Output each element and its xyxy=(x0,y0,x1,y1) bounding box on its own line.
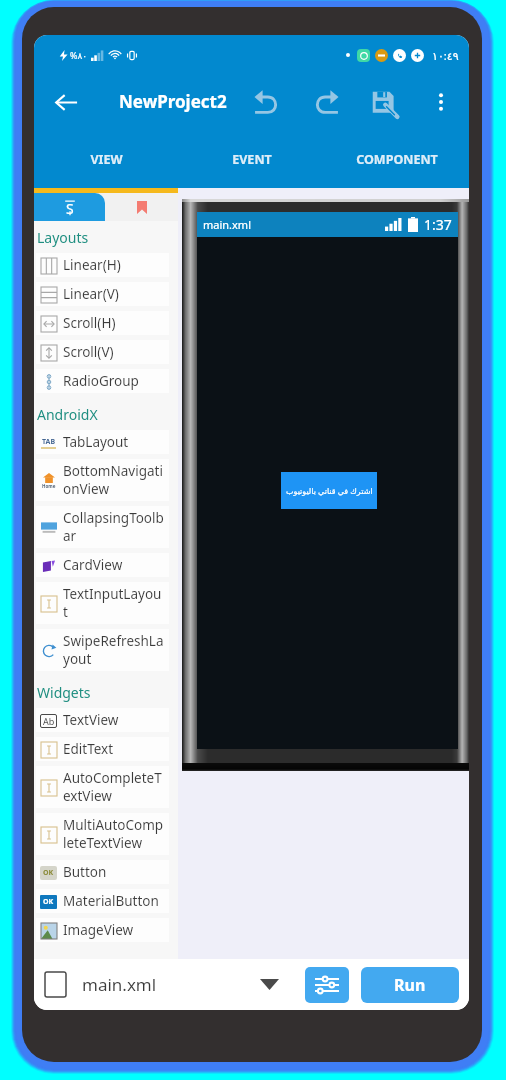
button[interactable]: Home xyxy=(36,459,169,501)
staticText: AndroidX xyxy=(37,405,98,424)
staticText: CardView xyxy=(63,556,123,574)
button[interactable]: Scroll(H) xyxy=(36,311,169,335)
staticText: MaterialButton xyxy=(63,892,159,910)
button[interactable]: Save xyxy=(363,80,407,124)
button[interactable]: Linear(V) xyxy=(36,282,169,306)
staticText: EditText xyxy=(63,740,114,758)
button[interactable]: AutoCompleteTextView xyxy=(36,766,169,808)
button[interactable]: Run xyxy=(361,967,459,1003)
button[interactable]: Settings xyxy=(305,967,349,1003)
button[interactable]: Linear(H) xyxy=(36,253,169,277)
button[interactable]: main.xml xyxy=(45,959,305,1010)
staticText: Linear(H) xyxy=(63,256,121,274)
button[interactable]: TextInputLayout xyxy=(36,582,169,624)
staticText: TAB xyxy=(42,437,56,447)
button[interactable]: OK xyxy=(36,860,169,884)
staticText: SwipeRefreshLayout xyxy=(63,632,166,668)
staticText: اشترك في قناتي باليوتيوب xyxy=(286,485,373,496)
staticText: MultiAutoCompleteTextView xyxy=(63,816,166,852)
staticText: OK xyxy=(43,897,54,907)
button[interactable]: EVENT xyxy=(179,128,324,188)
staticText: Ab xyxy=(43,715,55,727)
staticText: %٨٠ xyxy=(70,49,88,61)
staticText: ‎١٠:٤٩‎ xyxy=(432,48,459,63)
button[interactable]: Favorites xyxy=(105,193,178,221)
button[interactable]: CollapsingToolbar xyxy=(36,506,169,548)
staticText: Button xyxy=(63,863,107,881)
staticText: AutoCompleteTextView xyxy=(63,769,166,805)
button[interactable]: Scroll(V) xyxy=(36,340,169,364)
button[interactable]: اشترك في قناتي باليوتيوب xyxy=(281,472,377,509)
staticText: NewProject2 xyxy=(119,90,227,113)
staticText: VIEW xyxy=(90,151,123,168)
staticText: TabLayout xyxy=(63,433,129,451)
button[interactable]: OK xyxy=(36,889,169,913)
button[interactable]: TAB xyxy=(36,430,169,454)
staticText: RadioGroup xyxy=(63,372,139,390)
staticText: CollapsingToolbar xyxy=(63,509,166,545)
staticText: Layouts xyxy=(37,228,89,247)
button[interactable]: RadioGroup xyxy=(36,369,169,393)
button[interactable]: CardView xyxy=(36,553,169,577)
button[interactable]: More options xyxy=(426,80,456,124)
button[interactable]: ImageView xyxy=(36,918,169,942)
staticText: ImageView xyxy=(63,921,134,939)
staticText: main.xml xyxy=(203,217,251,232)
button[interactable]: Undo xyxy=(243,80,287,124)
staticText: 1:37 xyxy=(424,215,452,234)
button[interactable]: Palette xyxy=(34,193,105,221)
staticText: Run xyxy=(394,974,426,996)
staticText: BottomNavigationView xyxy=(63,462,166,498)
staticText: main.xml xyxy=(82,973,157,996)
staticText: Scroll(H) xyxy=(63,314,116,332)
staticText: S xyxy=(66,199,74,218)
button[interactable]: VIEW xyxy=(34,128,179,188)
staticText: EVENT xyxy=(232,151,272,168)
staticText: Linear(V) xyxy=(63,285,119,303)
button[interactable]: Back xyxy=(44,80,88,124)
staticText: TextView xyxy=(63,711,119,729)
button[interactable]: Redo xyxy=(305,80,349,124)
staticText: Scroll(V) xyxy=(63,343,114,361)
button[interactable]: EditText xyxy=(36,737,169,761)
button[interactable]: COMPONENT xyxy=(324,128,469,188)
staticText: COMPONENT xyxy=(356,151,438,168)
staticText: OK xyxy=(43,868,54,878)
staticText: Widgets xyxy=(37,683,91,702)
button[interactable]: MultiAutoCompleteTextView xyxy=(36,813,169,855)
button[interactable]: Ab xyxy=(36,708,169,732)
button[interactable]: SwipeRefreshLayout xyxy=(36,629,169,671)
staticText: TextInputLayout xyxy=(63,585,166,621)
staticText: Home xyxy=(42,483,56,489)
